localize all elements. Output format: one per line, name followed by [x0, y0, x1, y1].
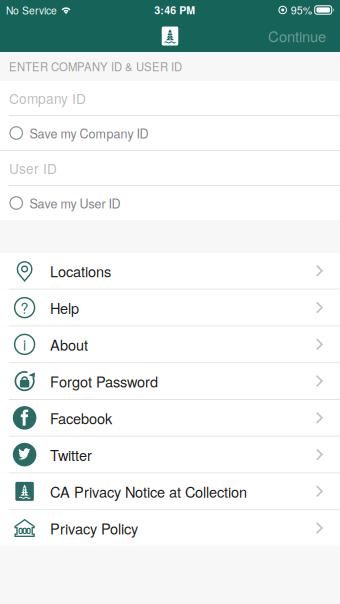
- staticText: Continue: [268, 25, 326, 46]
- staticText: Save my Company ID: [29, 124, 148, 142]
- staticText: No Service: [6, 3, 57, 17]
- staticText: Facebook: [50, 407, 112, 428]
- staticText: Locations: [50, 260, 111, 281]
- staticText: ?: [21, 298, 29, 318]
- staticText: Save my User ID: [29, 194, 120, 212]
- button[interactable]: Facebook: [0, 400, 340, 436]
- button[interactable]: ?: [0, 290, 340, 326]
- button[interactable]: Locations: [0, 253, 340, 289]
- staticText: Company ID: [9, 88, 86, 108]
- button[interactable]: Twitter: [0, 437, 340, 473]
- staticText: i: [23, 334, 26, 354]
- button[interactable]: Privacy Policy: [0, 510, 340, 546]
- staticText: 3:46 PM: [154, 2, 195, 18]
- button[interactable]: CA Privacy Notice at Collection: [0, 473, 340, 509]
- button[interactable]: i: [0, 326, 340, 362]
- button[interactable]: Save my User ID: [0, 186, 340, 220]
- button[interactable]: Continue: [256, 20, 340, 52]
- staticText: Help: [50, 297, 79, 318]
- staticText: ENTER COMPANY ID & USER ID: [9, 58, 182, 74]
- staticText: Twitter: [50, 444, 92, 465]
- button[interactable]: Company ID: [0, 81, 340, 115]
- staticText: 95%: [291, 2, 312, 18]
- button[interactable]: Save my Company ID: [0, 116, 340, 150]
- staticText: User ID: [9, 158, 57, 178]
- staticText: About: [50, 334, 88, 355]
- staticText: Privacy Policy: [50, 518, 138, 538]
- button[interactable]: User ID: [0, 151, 340, 185]
- button[interactable]: Forgot Password: [0, 363, 340, 399]
- staticText: CA Privacy Notice at Collection: [50, 481, 247, 502]
- staticText: Forgot Password: [50, 371, 158, 391]
